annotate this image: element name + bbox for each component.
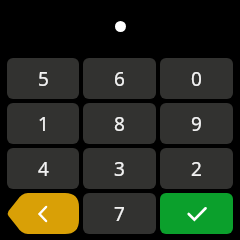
- button[interactable]: 4: [7, 148, 79, 189]
- button[interactable]: Confirm: [160, 193, 233, 234]
- button[interactable]: 0: [160, 58, 233, 99]
- staticText: 7: [114, 201, 125, 227]
- staticText: 6: [114, 66, 125, 92]
- button[interactable]: 9: [160, 103, 233, 144]
- button[interactable]: 3: [83, 148, 156, 189]
- staticText: 9: [191, 111, 202, 137]
- staticText: 2: [191, 156, 202, 182]
- button[interactable]: 2: [160, 148, 233, 189]
- staticText: 5: [38, 66, 49, 92]
- button[interactable]: 7: [83, 193, 156, 234]
- button[interactable]: Back: [7, 193, 79, 234]
- staticText: 4: [38, 156, 49, 182]
- button[interactable]: 5: [7, 58, 79, 99]
- staticText: 1: [38, 111, 49, 137]
- staticText: 8: [114, 111, 125, 137]
- button[interactable]: 8: [83, 103, 156, 144]
- button[interactable]: 6: [83, 58, 156, 99]
- button[interactable]: 1: [7, 103, 79, 144]
- staticText: 3: [114, 156, 125, 182]
- staticText: 0: [191, 66, 202, 92]
